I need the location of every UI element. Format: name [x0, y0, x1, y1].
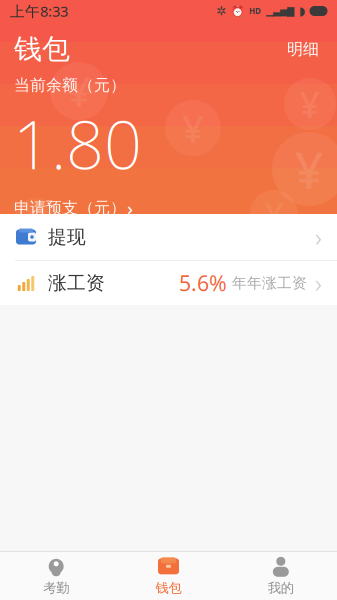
staticText: ›: [127, 196, 133, 220]
staticText: ¥: [27, 200, 44, 239]
staticText: 申请预支（元）: [14, 198, 126, 218]
staticText: ¥: [265, 193, 283, 235]
button[interactable]: 申请预支（元）: [0, 196, 337, 274]
staticText: 当前余额（元）: [14, 75, 126, 95]
button[interactable]: 涨工资: [0, 261, 337, 305]
staticText: ¥: [182, 102, 204, 154]
staticText: 可预支: [74, 237, 122, 256]
button[interactable]: 提现: [0, 214, 337, 260]
button[interactable]: 我的: [225, 552, 337, 600]
staticText: ¥: [294, 135, 323, 203]
staticText: 涨工资: [48, 271, 105, 294]
staticText: 钱包: [14, 32, 70, 66]
staticText: ▁▃▅▇: [266, 6, 294, 16]
staticText: ¥: [67, 64, 90, 117]
staticText: 考勤: [43, 580, 69, 596]
staticText: 上午8:33: [10, 1, 68, 21]
staticText: 钱包: [155, 580, 181, 596]
button[interactable]: 明细: [283, 35, 323, 63]
staticText: 年年涨工资: [232, 274, 307, 292]
staticText: 提现: [48, 225, 86, 248]
staticText: ◗: [299, 4, 305, 18]
staticText: 1.80: [13, 99, 142, 187]
staticText: 5.6%: [179, 269, 227, 297]
staticText: ✲: [216, 4, 226, 18]
staticText: HD: [249, 6, 261, 16]
button[interactable]: 钱包: [112, 552, 225, 600]
staticText: ¥: [299, 80, 320, 128]
staticText: ›: [315, 266, 322, 300]
staticText: 我的: [268, 580, 294, 596]
staticText: 0.00: [14, 222, 69, 260]
staticText: ⏰: [231, 5, 244, 17]
staticText: 明细: [287, 39, 319, 59]
button[interactable]: 考勤: [0, 552, 112, 600]
staticText: ›: [315, 220, 322, 254]
